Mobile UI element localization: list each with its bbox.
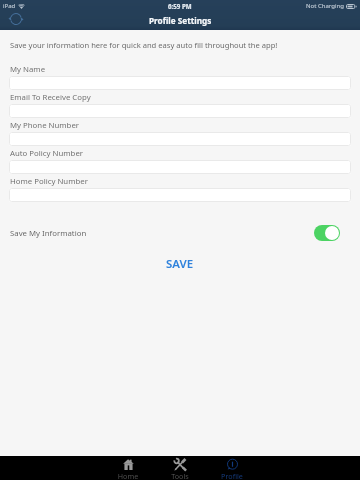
- staticText: iPad: [3, 2, 16, 10]
- staticText: Tools: [160, 471, 200, 480]
- staticText: 6:59 PM: [168, 2, 192, 10]
- staticText: Save your information here for quick and…: [10, 40, 278, 50]
- button[interactable]: [9, 132, 351, 146]
- button[interactable]: [9, 76, 351, 90]
- button[interactable]: [9, 188, 351, 202]
- staticText: Profile: [212, 471, 252, 480]
- staticText: My Name: [10, 64, 46, 75]
- staticText: Home Policy Number: [10, 176, 88, 187]
- button[interactable]: Tools: [160, 456, 200, 480]
- button[interactable]: Profile: [212, 456, 252, 480]
- button[interactable]: Home: [108, 456, 148, 480]
- staticText: Profile Settings: [149, 15, 212, 26]
- staticText: Home: [108, 471, 148, 480]
- staticText: SAVE: [166, 256, 194, 272]
- button[interactable]: [9, 104, 351, 118]
- staticText: Auto Policy Number: [10, 148, 84, 159]
- staticText: Email To Receive Copy: [10, 92, 91, 103]
- button[interactable]: Save My Information toggle: [314, 225, 340, 241]
- staticText: My Phone Number: [10, 120, 80, 131]
- staticText: Save My Information: [10, 228, 87, 239]
- button[interactable]: Refresh: [5, 8, 27, 30]
- staticText: Not Charging: [306, 2, 344, 10]
- button[interactable]: [9, 160, 351, 174]
- button[interactable]: SAVE: [150, 253, 210, 275]
